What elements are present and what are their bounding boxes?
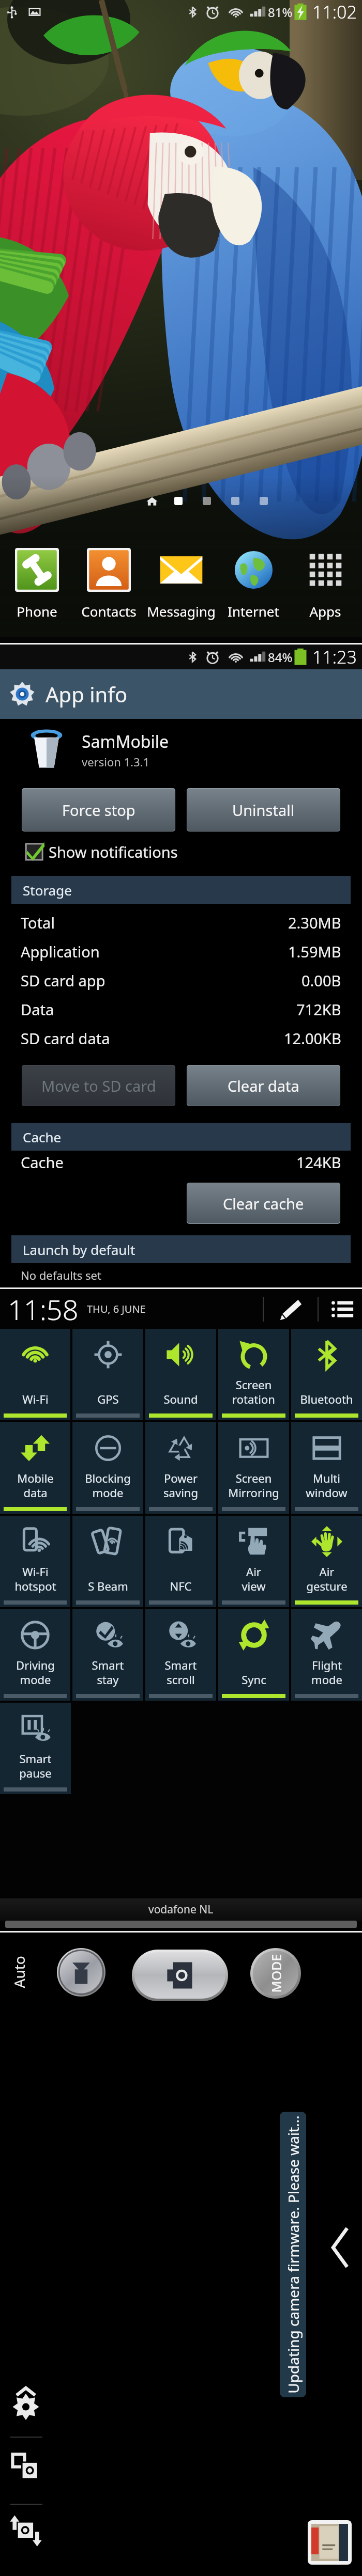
- staticText: Wi-Fi hotspot: [14, 1564, 56, 1594]
- staticText: 0.00B: [301, 970, 341, 991]
- staticText: Air view: [242, 1564, 266, 1594]
- button[interactable]: Contacts: [73, 545, 144, 620]
- button[interactable]: Switch camera: [9, 2449, 42, 2482]
- staticText: NFC: [170, 1578, 192, 1594]
- staticText: Flight mode: [311, 1657, 342, 1687]
- staticText: 712KB: [296, 999, 341, 1019]
- staticText: Sync: [242, 1672, 266, 1687]
- button[interactable]: Edit: [278, 1297, 303, 1322]
- button[interactable]: Messaging: [145, 545, 217, 620]
- staticText: Contacts: [81, 602, 137, 620]
- staticText: Wi-Fi: [22, 1391, 49, 1407]
- staticText: Storage: [23, 881, 72, 899]
- button[interactable]: Gallery: [311, 2524, 348, 2561]
- staticText: 12.00KB: [284, 1028, 341, 1048]
- staticText: Move to SD card: [41, 1076, 156, 1096]
- button[interactable]: NFC: [145, 1516, 216, 1607]
- staticText: Multi window: [306, 1470, 348, 1500]
- button[interactable]: Expand panel: [331, 2227, 349, 2268]
- staticText: Auto: [9, 1955, 29, 1988]
- button[interactable]: GPS: [72, 1329, 143, 1420]
- button[interactable]: Screen rotation: [218, 1329, 289, 1420]
- staticText: Power saving: [163, 1470, 198, 1500]
- staticText: SamMobile: [82, 730, 169, 753]
- button[interactable]: Air view: [218, 1516, 289, 1607]
- staticText: Internet: [228, 602, 279, 620]
- button[interactable]: Internet: [218, 545, 289, 620]
- staticText: Blocking mode: [85, 1470, 131, 1500]
- staticText: Smart stay: [92, 1657, 124, 1687]
- button[interactable]: Notifications list: [331, 1298, 354, 1321]
- staticText: 1.59MB: [288, 941, 341, 962]
- staticText: Smart scroll: [164, 1657, 197, 1687]
- staticText: Data: [21, 999, 54, 1019]
- staticText: Mobile data: [17, 1470, 54, 1500]
- button[interactable]: Flash: [57, 1948, 105, 1997]
- staticText: 11:02: [312, 0, 357, 24]
- button[interactable]: Smart stay: [72, 1609, 143, 1701]
- staticText: Screen rotation: [232, 1377, 275, 1407]
- staticText: Driving mode: [16, 1657, 55, 1687]
- staticText: Air gesture: [306, 1564, 348, 1594]
- button[interactable]: Sound: [145, 1329, 216, 1420]
- button[interactable]: Clear cache: [187, 1183, 340, 1224]
- staticText: Clear data: [228, 1076, 299, 1096]
- button[interactable]: Wi-Fi: [0, 1329, 70, 1420]
- button[interactable]: Force stop: [22, 788, 175, 831]
- button[interactable]: Driving mode: [0, 1609, 70, 1701]
- button[interactable]: Wi-Fi hotspot: [0, 1516, 70, 1607]
- button[interactable]: Share shot: [9, 2514, 42, 2547]
- staticText: Apps: [309, 602, 341, 620]
- staticText: Updating camera firmware. Please wait...: [283, 2115, 303, 2394]
- staticText: Messaging: [147, 602, 216, 620]
- staticText: Total: [21, 913, 55, 933]
- staticText: Cache: [21, 1152, 64, 1172]
- button[interactable]: Clear data: [187, 1065, 340, 1106]
- staticText: 81%: [268, 4, 293, 21]
- button[interactable]: Uninstall: [187, 788, 340, 831]
- staticText: Bluetooth: [300, 1391, 353, 1407]
- button[interactable]: Air gesture: [291, 1516, 362, 1607]
- staticText: Launch by default: [23, 1240, 135, 1259]
- staticText: version 1.3.1: [82, 754, 150, 769]
- staticText: S Beam: [88, 1578, 128, 1594]
- button[interactable]: Settings: [9, 2387, 42, 2420]
- button[interactable]: Smart scroll: [145, 1609, 216, 1701]
- staticText: 124KB: [296, 1152, 341, 1172]
- button[interactable]: Smart pause: [0, 1703, 71, 1794]
- button[interactable]: Sync: [218, 1609, 289, 1701]
- staticText: 11:58: [8, 1290, 79, 1328]
- staticText: GPS: [97, 1391, 119, 1407]
- button[interactable]: Shutter: [132, 1950, 228, 2001]
- staticText: Force stop: [62, 800, 135, 820]
- staticText: Screen Mirroring: [228, 1470, 279, 1500]
- staticText: Uninstall: [232, 800, 295, 820]
- button[interactable]: Power saving: [145, 1422, 216, 1514]
- staticText: Smart pause: [19, 1751, 52, 1781]
- staticText: SD card app: [21, 970, 105, 991]
- staticText: Cache: [23, 1128, 62, 1146]
- button[interactable]: App info: [0, 669, 362, 719]
- button[interactable]: Show notifications: [0, 838, 362, 866]
- staticText: Sound: [163, 1391, 198, 1407]
- staticText: MODE: [267, 1954, 285, 1993]
- staticText: 11:23: [312, 645, 357, 669]
- staticText: Phone: [17, 602, 57, 620]
- button[interactable]: Blocking mode: [72, 1422, 143, 1514]
- button[interactable]: Apps: [290, 545, 361, 620]
- button[interactable]: Move to SD card: [22, 1065, 175, 1106]
- staticText: Show notifications: [49, 842, 178, 862]
- staticText: THU, 6 JUNE: [87, 1302, 146, 1316]
- button[interactable]: Mobile data: [0, 1422, 70, 1514]
- button[interactable]: S Beam: [72, 1516, 143, 1607]
- button[interactable]: Mode: [250, 1948, 301, 1999]
- button[interactable]: Phone: [1, 545, 72, 620]
- staticText: 84%: [268, 649, 293, 666]
- button[interactable]: Bluetooth: [291, 1329, 362, 1420]
- button[interactable]: Screen Mirroring: [218, 1422, 289, 1514]
- staticText: Clear cache: [223, 1193, 304, 1214]
- staticText: No defaults set: [21, 1267, 101, 1283]
- staticText: 2.30MB: [288, 913, 341, 933]
- button[interactable]: Flight mode: [291, 1609, 362, 1701]
- button[interactable]: Multi window: [291, 1422, 362, 1514]
